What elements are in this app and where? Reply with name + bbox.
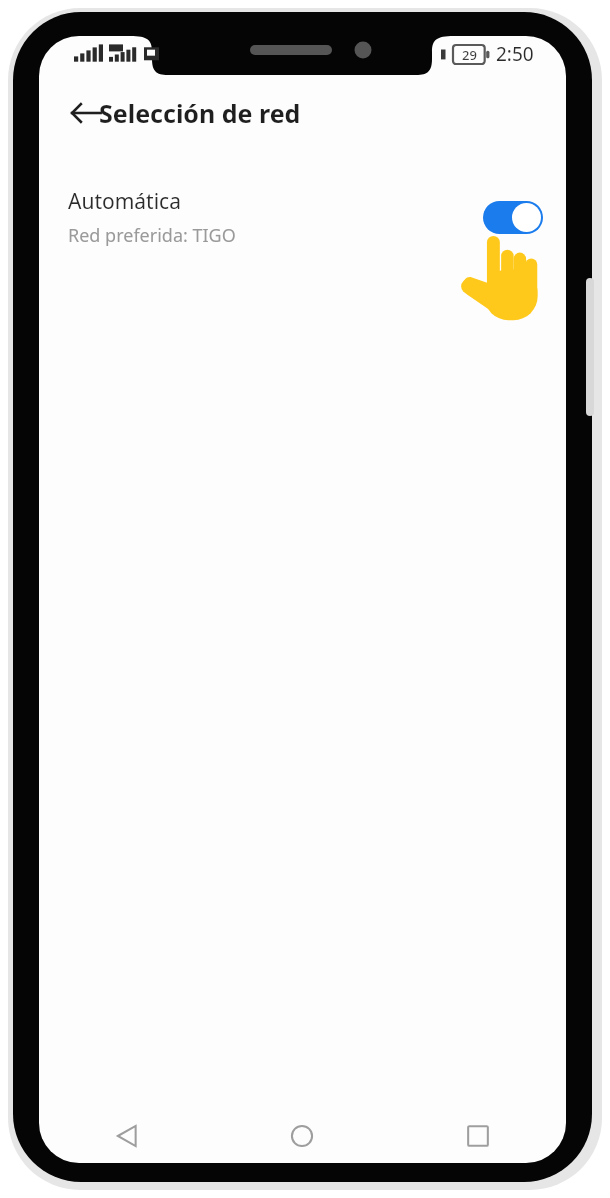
button[interactable]: Automática — [39, 180, 566, 254]
button[interactable]: Back — [39, 1110, 214, 1162]
staticText: Red preferida: TIGO — [68, 223, 236, 248]
button[interactable]: Home — [214, 1110, 390, 1162]
button[interactable]: Automatic network selection toggle — [483, 201, 543, 234]
staticText: 2:50 — [496, 41, 534, 67]
staticText: Automática — [68, 187, 181, 216]
staticText: Selección de red — [99, 96, 301, 130]
staticText: 29 — [462, 46, 477, 64]
button[interactable]: Recent apps — [390, 1110, 566, 1162]
button[interactable]: Back — [63, 90, 109, 136]
